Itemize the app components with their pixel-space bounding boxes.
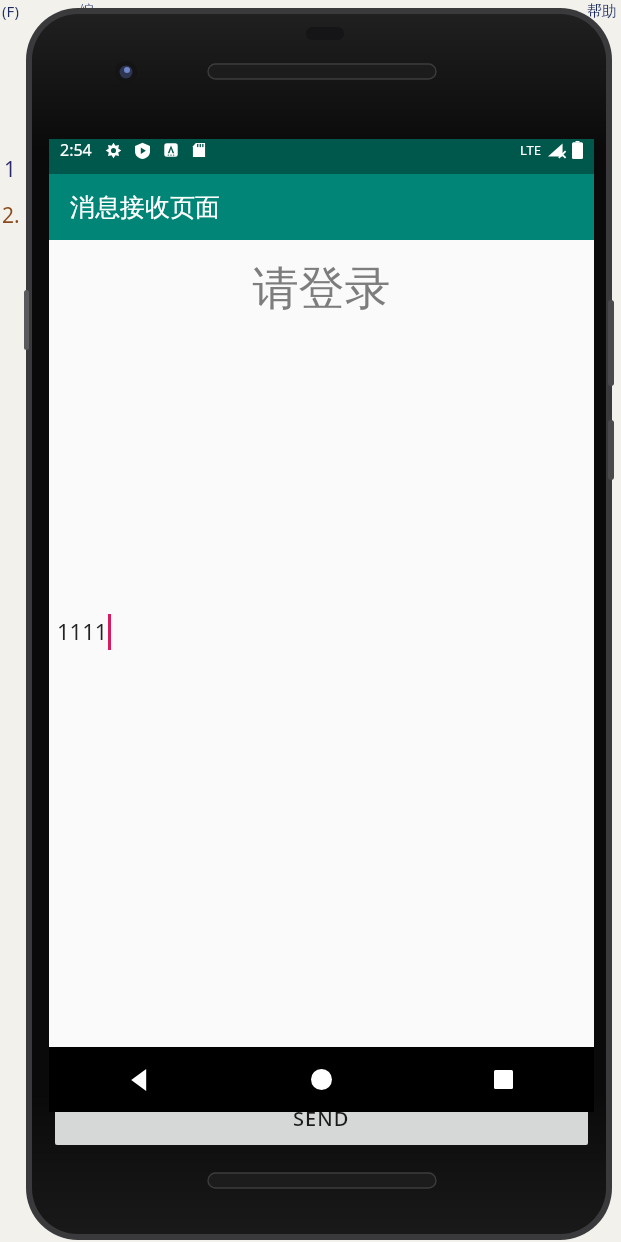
staticText: SEND (293, 1105, 350, 1132)
button[interactable]: Back (49, 1047, 230, 1112)
button[interactable]: SEND (55, 1092, 588, 1145)
staticText: 1111 (57, 616, 108, 646)
staticText: 消息接收页面 (70, 192, 220, 223)
staticText: 编 (80, 2, 94, 20)
staticText: 1 (4, 155, 17, 184)
button[interactable]: Recent apps (412, 1047, 594, 1112)
button[interactable]: 1111 (57, 350, 311, 1070)
staticText: (F) (2, 1, 20, 21)
staticText: 帮助 (587, 2, 617, 21)
staticText: LTE (520, 141, 542, 159)
staticText: 请登录 (49, 260, 594, 318)
button[interactable]: Home (230, 1047, 412, 1112)
staticText: 2:54 (60, 139, 92, 161)
staticText: 2. (2, 201, 20, 230)
